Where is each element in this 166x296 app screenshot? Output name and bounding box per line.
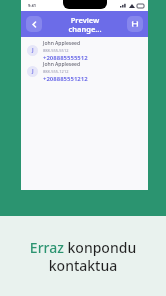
button[interactable]: Back xyxy=(26,16,42,32)
staticText: J xyxy=(32,68,34,75)
button[interactable]: Save xyxy=(127,16,143,32)
staticText: +208885551212 xyxy=(43,75,88,82)
staticText: Erraz konpondu kontaktua xyxy=(24,238,142,275)
button[interactable]: J xyxy=(21,61,148,82)
staticText: J xyxy=(32,47,34,54)
staticText: John Appleseed xyxy=(43,61,81,68)
staticText: Preview change... xyxy=(68,15,102,34)
button[interactable]: J xyxy=(21,40,148,61)
staticText: 888-555-1212 xyxy=(43,69,69,74)
staticText: John Appleseed xyxy=(43,40,81,47)
staticText: 9:41 xyxy=(28,3,36,8)
staticText: +208885555512 xyxy=(43,54,88,61)
staticText: 888-555-5512 xyxy=(43,48,69,53)
